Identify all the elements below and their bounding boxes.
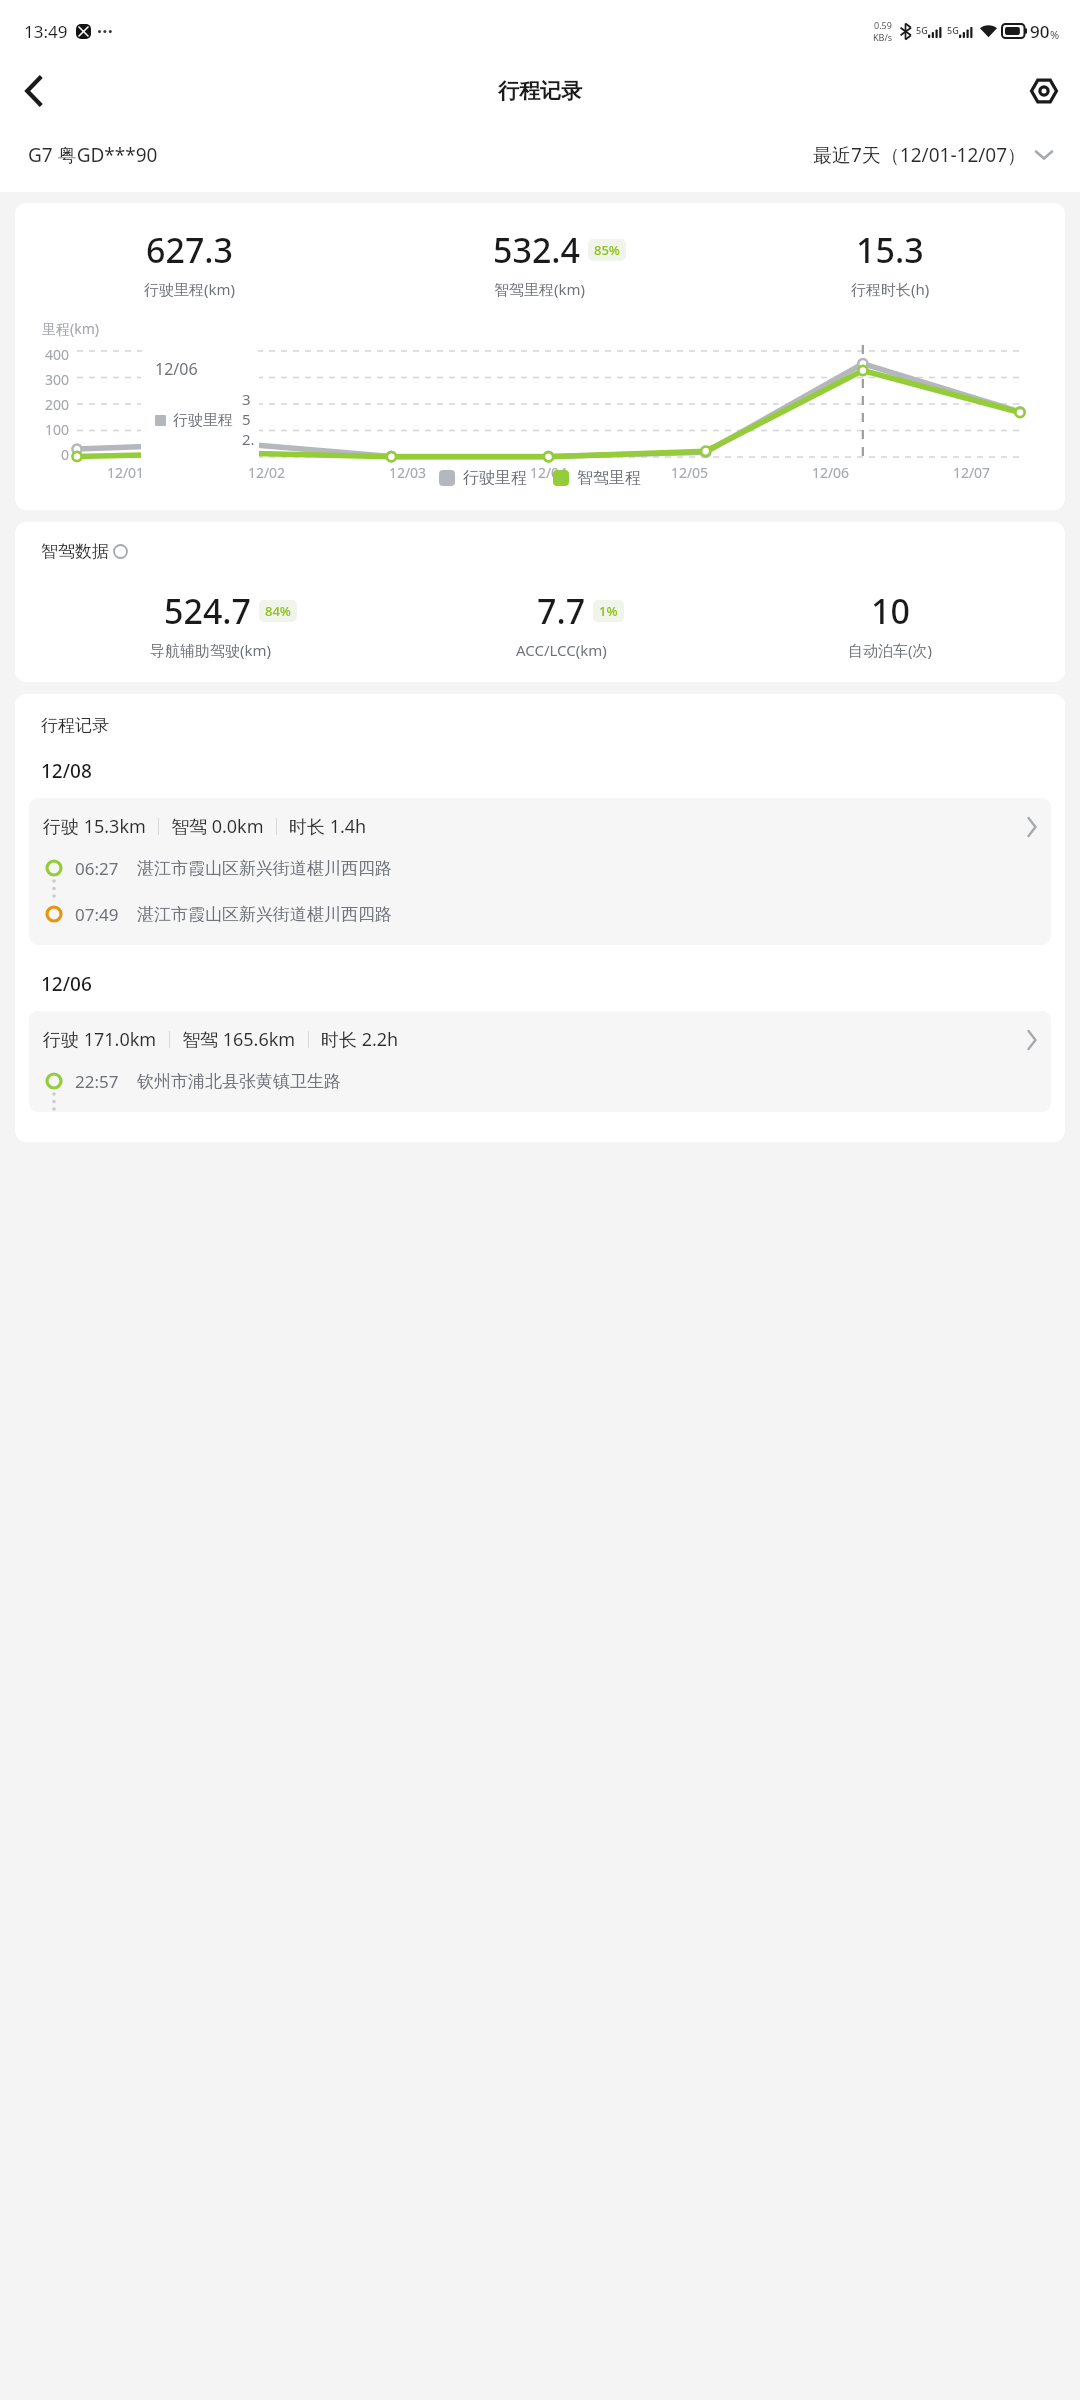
staticText: 12/01 [55, 463, 196, 482]
staticText: 84% [265, 602, 291, 620]
staticText: 行驶 15.3km [43, 814, 146, 839]
staticText: 钦州市浦北县张黄镇卫生路 [137, 1071, 341, 1092]
staticText: 智驾里程(km) [494, 279, 586, 299]
staticText: 85% [594, 241, 620, 259]
staticText: 12/08 [41, 758, 92, 784]
staticText: 12/04 [478, 463, 619, 482]
staticText: 12/02 [196, 463, 337, 482]
staticText: 行驶里程 [173, 411, 233, 430]
staticText: 12/07 [901, 463, 1042, 482]
staticText: 524.7 [164, 588, 252, 634]
button[interactable]: G7 粤GD***90 [28, 142, 158, 168]
staticText: 行程记录 [41, 715, 109, 736]
staticText: 22:57 [75, 1070, 119, 1093]
staticText: 时长 2.2h [321, 1027, 399, 1052]
staticText: 15.3 [856, 227, 924, 273]
staticText: 湛江市霞山区新兴街道椹川西四路 [137, 904, 392, 925]
button[interactable]: 行驶 171.0km [29, 1011, 1051, 1112]
staticText: 0.59 [874, 19, 892, 31]
staticText: 行驶 171.0km [43, 1027, 157, 1052]
staticText: KB/s [873, 31, 893, 43]
staticText: 12/06 [41, 971, 92, 997]
button[interactable]: Back [6, 64, 60, 118]
staticText: % [1050, 27, 1060, 42]
staticText: 12/03 [337, 463, 478, 482]
staticText: 10 [871, 588, 910, 634]
staticText: 智驾 0.0km [171, 814, 264, 839]
staticText: 0 [39, 445, 69, 464]
staticText: 湛江市霞山区新兴街道椹川西四路 [137, 858, 392, 879]
staticText: 90 [1030, 20, 1050, 43]
staticText: 智驾数据 [41, 541, 109, 562]
staticText: 100 [39, 420, 69, 439]
staticText: G7 粤GD***90 [28, 142, 158, 168]
staticText: 里程(km) [42, 319, 99, 338]
staticText: 13:49 [24, 20, 68, 43]
staticText: 智驾里程 [577, 468, 641, 488]
staticText: 行程时长(h) [851, 279, 930, 299]
staticText: 行驶里程(km) [144, 279, 236, 299]
staticText: 7.7 [537, 588, 586, 634]
staticText: 导航辅助驾驶(km) [150, 640, 272, 660]
staticText: 200 [39, 395, 69, 414]
staticText: 627.3 [146, 227, 234, 273]
staticText: 12/06 [760, 463, 901, 482]
staticText: 行程记录 [498, 78, 582, 104]
button[interactable]: 最近7天（12/01-12/07） [813, 142, 1052, 168]
staticText: ACC/LCC(km) [516, 640, 607, 660]
staticText: 时长 1.4h [289, 814, 367, 839]
button[interactable]: 智驾数据 [41, 541, 128, 562]
staticText: 07:49 [75, 903, 119, 926]
staticText: 400 [39, 345, 69, 364]
staticText: 352.2 [242, 389, 259, 452]
staticText: 5G [916, 24, 928, 36]
button[interactable]: 行驶 15.3km [29, 798, 1051, 945]
staticText: 06:27 [75, 857, 119, 880]
staticText: 532.4 [493, 227, 581, 273]
button[interactable]: Settings [1018, 65, 1070, 117]
staticText: 12/06 [155, 358, 198, 380]
staticText: 最近7天（12/01-12/07） [813, 142, 1027, 168]
staticText: 12/05 [619, 463, 760, 482]
staticText: 智驾 165.6km [182, 1027, 296, 1052]
staticText: 300 [39, 370, 69, 389]
staticText: 1% [599, 602, 618, 620]
staticText: 5G [947, 24, 959, 36]
staticText: 自动泊车(次) [848, 640, 933, 660]
staticText: 行驶里程 [463, 468, 527, 488]
